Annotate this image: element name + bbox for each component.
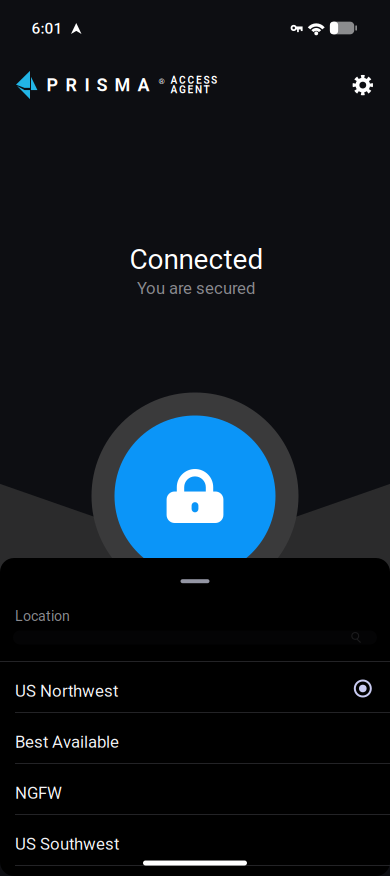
staticText: Best Available <box>15 732 119 752</box>
staticText: ® <box>158 77 164 86</box>
staticText: NGFW <box>15 783 62 803</box>
staticText: 6:01 <box>31 19 62 37</box>
button[interactable]: Disconnect <box>91 392 298 599</box>
staticText: You are secured <box>137 278 255 298</box>
staticText: Location <box>15 608 70 624</box>
staticText: Connected <box>129 243 263 276</box>
button[interactable]: US Southwest <box>0 815 390 865</box>
button[interactable]: Best Available <box>0 713 390 763</box>
staticText: AGENT <box>170 84 209 96</box>
button[interactable]: US Northwest <box>0 662 390 712</box>
button[interactable]: Settings <box>341 63 385 107</box>
staticText: US Southwest <box>15 834 119 854</box>
button[interactable]: NGFW <box>0 764 390 814</box>
staticText: PRISMA <box>46 74 149 96</box>
staticText: ACCESS <box>170 74 217 86</box>
staticText: US Northwest <box>15 681 118 701</box>
